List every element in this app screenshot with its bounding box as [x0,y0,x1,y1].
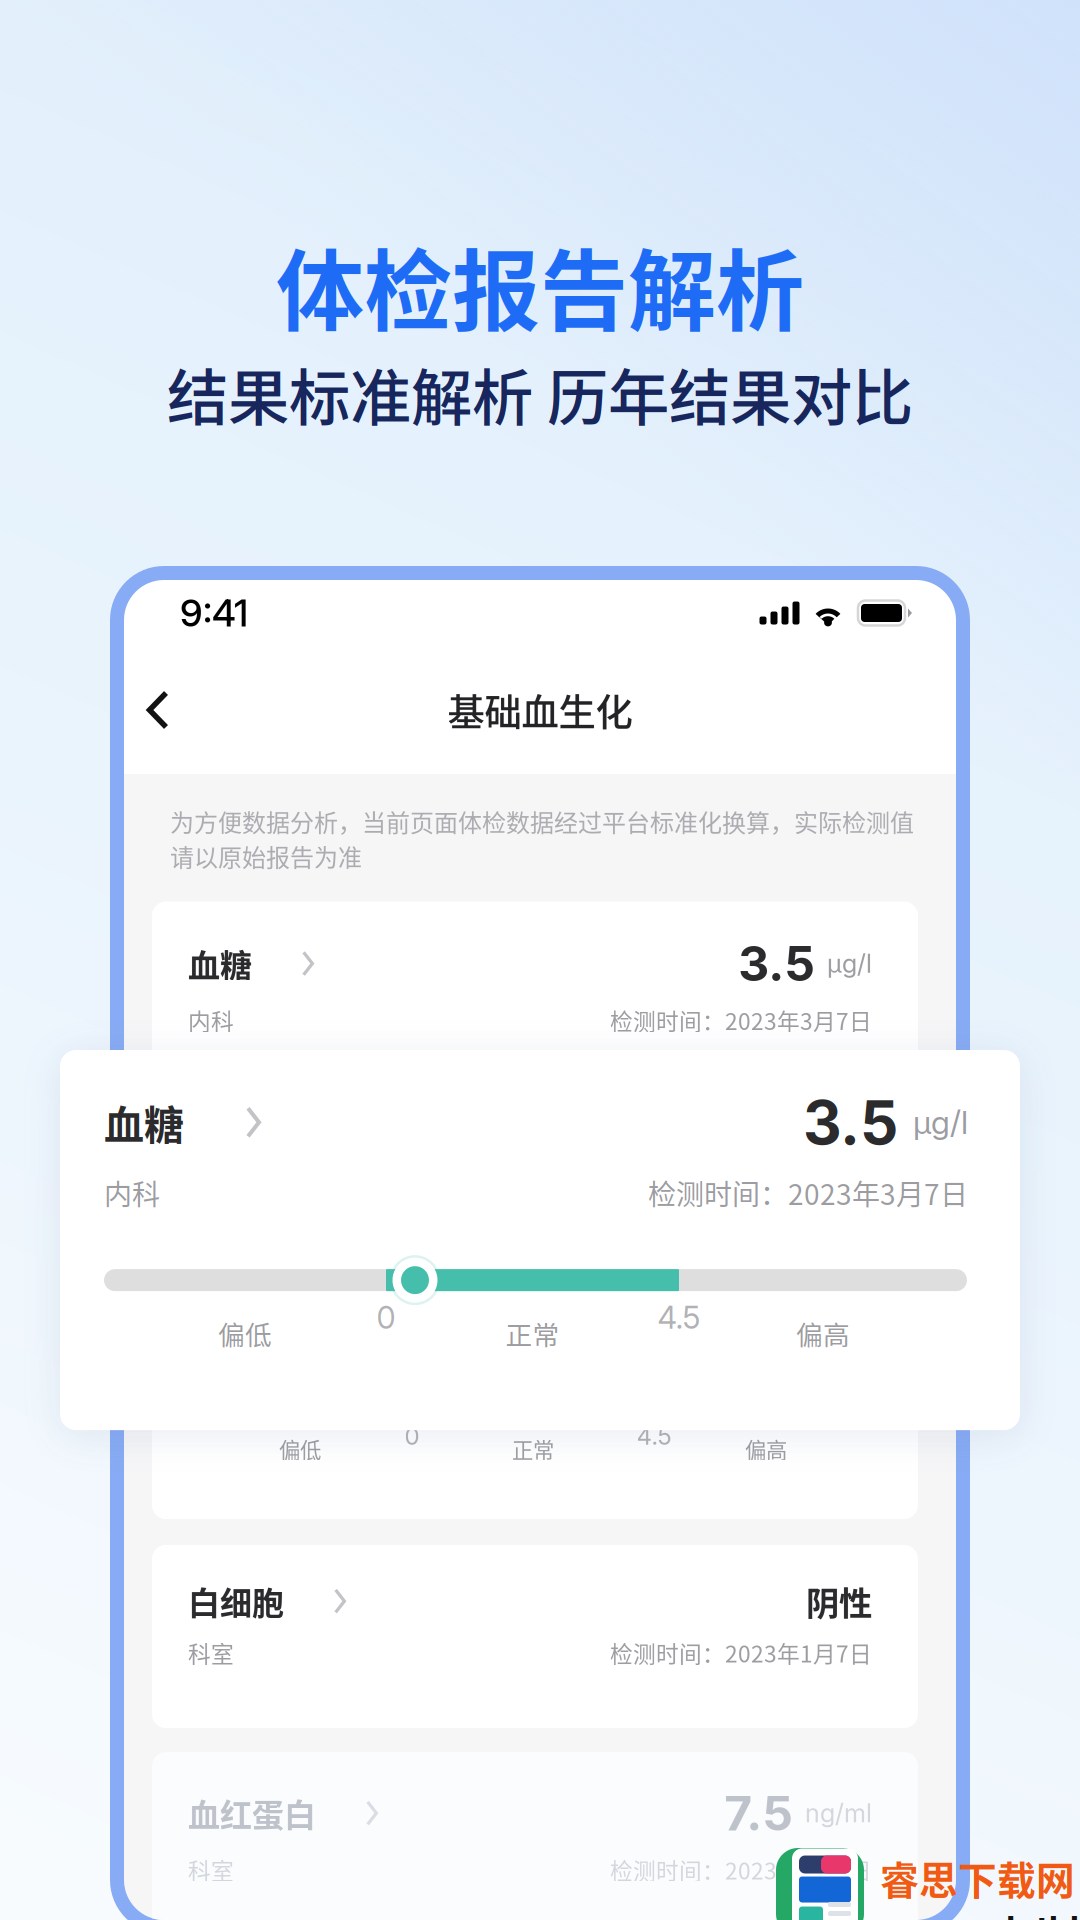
staticText: 正常 [512,1433,554,1464]
staticText: 偏高 [745,1433,787,1464]
staticText: 睿思下载网 [880,1850,1075,1906]
staticText: 血糖 [104,1093,184,1151]
staticText: 3.5 [803,1086,898,1159]
staticText: 检测时间：2023年3月7日 [610,1004,872,1036]
staticText: 内科 [188,1004,234,1036]
staticText: 0 [376,1299,395,1336]
staticText: 3.5 [738,934,815,993]
staticText: www.cdgthk.com [880,1908,1080,1920]
button[interactable]: 血糖 [60,1050,1020,1430]
staticText: 结果标准解析 历年结果对比 [167,349,913,438]
staticText: 偏低 [279,1433,321,1464]
staticText: 阴性 [806,1577,872,1625]
staticText: µg/l [827,948,872,979]
staticText: 检测时间：2023年1月7日 [610,1853,872,1886]
staticText: µg/l [913,1103,968,1142]
staticText: 内科 [104,1173,160,1213]
staticText: 血糖 [188,940,252,987]
staticText: 正常 [505,1314,559,1353]
staticText: 4.5 [636,1421,671,1450]
staticText: ng/ml [805,1798,872,1828]
button[interactable]: 血糖 [152,901,918,1519]
staticText: 偏高 [796,1314,850,1353]
button[interactable]: 血红蛋白 [152,1752,918,1920]
staticText: 9:41 [180,590,248,636]
staticText: 科室 [188,1853,234,1886]
staticText: 体检报告解析 [276,221,804,348]
staticText: 为方便数据分析，当前页面体检数据经过平台标准化换算，实际检测值请以原始报告为准 [170,804,914,873]
staticText: 0 [404,1421,419,1450]
staticText: 检测时间：2023年1月7日 [610,1636,872,1669]
button[interactable]: Back [124,670,192,750]
staticText: 科室 [188,1636,234,1669]
staticText: 4.5 [657,1299,700,1336]
staticText: 血红蛋白 [188,1790,316,1836]
staticText: 基础血生化 [447,683,632,737]
staticText: 白细胞 [188,1578,284,1624]
button[interactable]: 白细胞 [152,1545,918,1728]
staticText: 检测时间：2023年3月7日 [648,1173,968,1213]
staticText: 7.5 [724,1784,793,1842]
staticText: 偏低 [218,1314,272,1353]
